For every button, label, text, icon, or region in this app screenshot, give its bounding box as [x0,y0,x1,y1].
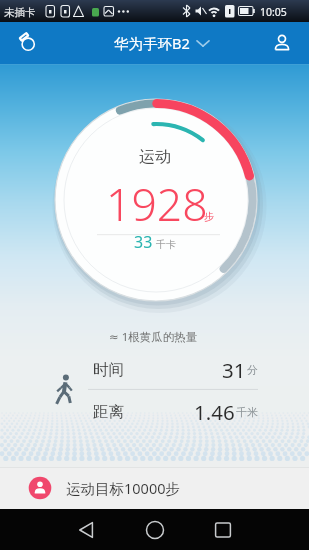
staticText: 1928 [106,173,208,233]
staticText: 1.46 [194,398,235,426]
staticText: 时间 [93,360,124,380]
button[interactable] [129,510,181,550]
staticText: 运动 [139,147,171,167]
button[interactable] [197,510,249,550]
staticText: 运动目标10000步 [66,478,180,498]
staticText: 未插卡 [4,6,36,19]
button[interactable] [266,28,298,58]
staticText: 千卡 [156,238,176,251]
staticText: 华为手环B2 [114,33,190,53]
staticText: 分 [247,363,258,377]
staticText: 千米 [236,405,258,419]
button[interactable] [60,510,112,550]
staticText: 33 [134,231,153,253]
staticText: ≈ 1根黄瓜的热量 [109,329,198,345]
staticText: 10:05 [260,5,287,19]
staticText: 距离 [93,402,124,422]
button[interactable] [0,467,309,509]
staticText: 31 [222,356,246,384]
button[interactable] [14,30,42,58]
staticText: 步 [204,210,214,223]
button[interactable] [108,26,214,60]
